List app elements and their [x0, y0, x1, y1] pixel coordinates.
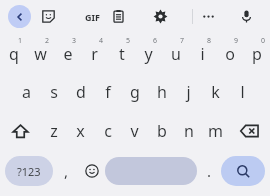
staticText: 2: [45, 36, 50, 46]
button[interactable]: r: [81, 35, 108, 73]
button[interactable]: Settings: [149, 5, 172, 28]
staticText: q: [9, 43, 19, 65]
staticText: s: [50, 81, 58, 103]
button[interactable]: k: [202, 73, 229, 111]
staticText: t: [119, 43, 125, 65]
staticText: b: [157, 120, 167, 142]
staticText: .: [207, 161, 212, 181]
staticText: 1: [18, 36, 23, 46]
staticText: e: [63, 43, 73, 65]
button[interactable]: y: [135, 35, 162, 73]
staticText: o: [225, 43, 235, 65]
button[interactable]: .: [197, 154, 221, 188]
staticText: 0: [261, 36, 266, 46]
button[interactable]: g: [121, 73, 148, 111]
button[interactable]: ,: [53, 154, 79, 188]
staticText: d: [76, 81, 86, 103]
staticText: j: [186, 81, 191, 103]
staticText: l: [240, 81, 245, 103]
button[interactable]: Shift: [0, 112, 40, 150]
staticText: g: [130, 81, 140, 103]
button[interactable]: More options: [197, 5, 220, 28]
button[interactable]: Clipboard: [107, 5, 130, 28]
staticText: k: [211, 81, 220, 103]
staticText: 7: [180, 36, 185, 46]
staticText: ?123: [17, 164, 41, 179]
button[interactable]: Search: [221, 156, 265, 186]
button[interactable]: s: [40, 73, 67, 111]
staticText: 9: [234, 36, 239, 46]
button[interactable]: q: [0, 35, 27, 73]
button[interactable]: n: [175, 112, 202, 150]
button[interactable]: z: [40, 112, 67, 150]
button[interactable]: h: [148, 73, 175, 111]
button[interactable]: ?123: [5, 156, 53, 186]
button[interactable]: w: [27, 35, 54, 73]
button[interactable]: o: [216, 35, 243, 73]
staticText: p: [252, 43, 262, 65]
staticText: c: [104, 120, 112, 142]
staticText: m: [208, 120, 223, 142]
staticText: z: [50, 120, 58, 142]
button[interactable]: v: [121, 112, 148, 150]
staticText: 6: [153, 36, 158, 46]
button[interactable]: Backspace: [229, 112, 270, 150]
button[interactable]: Emoji: [79, 154, 105, 188]
button[interactable]: t: [108, 35, 135, 73]
staticText: y: [144, 43, 153, 65]
staticText: x: [76, 120, 85, 142]
button[interactable]: x: [67, 112, 94, 150]
staticText: i: [200, 43, 205, 65]
staticText: v: [130, 120, 139, 142]
staticText: 5: [126, 36, 131, 46]
button[interactable]: Stickers: [37, 5, 60, 28]
button[interactable]: Space: [105, 157, 197, 185]
staticText: r: [91, 43, 98, 65]
button[interactable]: u: [162, 35, 189, 73]
button[interactable]: i: [189, 35, 216, 73]
staticText: n: [184, 120, 194, 142]
staticText: 3: [72, 36, 77, 46]
button[interactable]: b: [148, 112, 175, 150]
button[interactable]: a: [13, 73, 40, 111]
staticText: w: [34, 43, 47, 65]
staticText: f: [105, 81, 111, 103]
button[interactable]: Voice input: [235, 5, 258, 28]
button[interactable]: d: [67, 73, 94, 111]
staticText: h: [157, 81, 167, 103]
button[interactable]: e: [54, 35, 81, 73]
staticText: u: [171, 43, 181, 65]
staticText: 4: [99, 36, 104, 46]
staticText: ,: [64, 161, 69, 181]
button[interactable]: Back: [8, 5, 31, 28]
button[interactable]: f: [94, 73, 121, 111]
button[interactable]: j: [175, 73, 202, 111]
staticText: a: [22, 81, 31, 103]
staticText: 8: [207, 36, 212, 46]
staticText: GIF: [85, 11, 100, 23]
button[interactable]: c: [94, 112, 121, 150]
button[interactable]: l: [229, 73, 256, 111]
button[interactable]: GIF: [78, 5, 106, 28]
button[interactable]: m: [202, 112, 229, 150]
button[interactable]: p: [243, 35, 270, 73]
